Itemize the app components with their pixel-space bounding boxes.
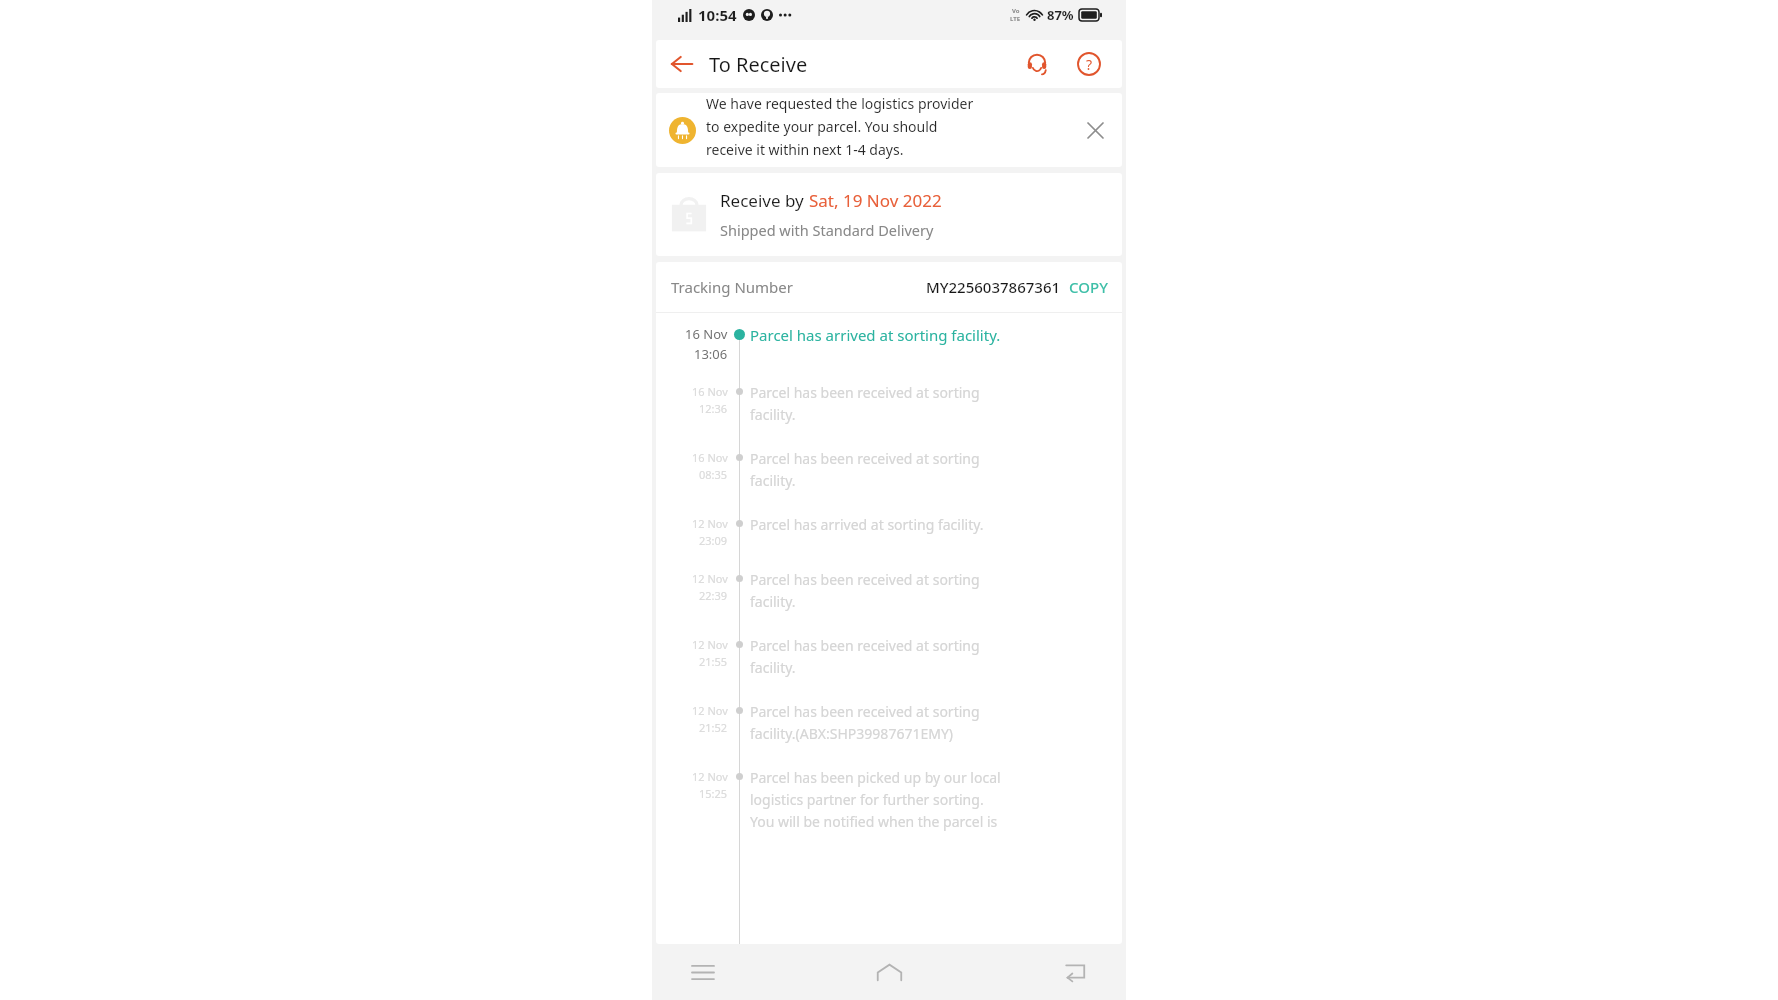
staticText: 12 Nov xyxy=(692,571,728,586)
button[interactable]: 12 Nov xyxy=(656,636,1122,680)
staticText: ? xyxy=(1086,55,1093,74)
staticText: 12 Nov xyxy=(692,637,728,652)
button[interactable]: Help xyxy=(1068,43,1110,85)
staticText: Parcel has arrived at sorting facility. xyxy=(750,325,1001,345)
button[interactable]: Tracking Number xyxy=(656,262,1122,312)
staticText: 15:25 xyxy=(699,786,728,801)
staticText: 21:55 xyxy=(699,654,728,669)
staticText: Parcel has been received at sorting xyxy=(750,702,980,721)
button[interactable]: 16 Nov xyxy=(656,325,1122,363)
staticText: 12:36 xyxy=(699,401,728,416)
staticText: 21:52 xyxy=(699,720,728,735)
button[interactable]: 12 Nov xyxy=(656,570,1122,614)
button[interactable]: 16 Nov xyxy=(656,383,1122,427)
staticText: 12 Nov xyxy=(692,516,728,531)
button[interactable]: Home xyxy=(862,945,916,999)
staticText: Sat, 19 Nov 2022 xyxy=(809,189,942,212)
staticText: logistics partner for further sorting. xyxy=(750,790,984,809)
staticText: Tracking Number xyxy=(671,277,793,297)
staticText: 16 Nov xyxy=(692,384,728,399)
staticText: facility.(ABX:SHP39987671EMY) xyxy=(750,724,954,743)
staticText: receive it within next 1-4 days. xyxy=(706,140,904,159)
staticText: Parcel has been received at sorting xyxy=(750,449,980,468)
button[interactable]: Recent apps xyxy=(676,945,730,999)
button[interactable]: 16 Nov xyxy=(656,449,1122,493)
staticText: COPY xyxy=(1069,277,1108,297)
staticText: to expedite your parcel. You should xyxy=(706,117,938,136)
button[interactable]: 12 Nov xyxy=(656,768,1122,834)
staticText: 12 Nov xyxy=(692,703,728,718)
button[interactable]: Close xyxy=(1078,113,1112,147)
staticText: 16 Nov xyxy=(692,450,728,465)
button[interactable]: We have requested the logistics provider xyxy=(656,93,1122,167)
staticText: 22:39 xyxy=(699,588,728,603)
staticText: Shipped with Standard Delivery xyxy=(720,220,934,240)
staticText: MY2256037867361 xyxy=(926,277,1061,297)
staticText: To Receive xyxy=(709,51,808,78)
staticText: 87% xyxy=(1047,6,1074,24)
staticText: facility. xyxy=(750,471,796,490)
staticText: 08:35 xyxy=(699,467,728,482)
staticText: LTE xyxy=(1010,15,1021,23)
button[interactable]: Back xyxy=(1048,945,1102,999)
staticText: 10:54 xyxy=(698,5,737,25)
button[interactable]: 12 Nov xyxy=(656,702,1122,746)
staticText: We have requested the logistics provider xyxy=(706,94,974,113)
staticText: Parcel has arrived at sorting facility. xyxy=(750,515,984,534)
staticText: Receive by xyxy=(720,189,809,212)
staticText: 16 Nov xyxy=(685,325,728,343)
staticText: Parcel has been received at sorting xyxy=(750,636,980,655)
staticText: Vo xyxy=(1012,7,1020,15)
staticText: Parcel has been received at sorting xyxy=(750,570,980,589)
staticText: 13:06 xyxy=(694,345,728,363)
staticText: 12 Nov xyxy=(692,769,728,784)
button[interactable]: 12 Nov xyxy=(656,515,1122,548)
staticText: 23:09 xyxy=(699,533,728,548)
staticText: facility. xyxy=(750,658,796,677)
button[interactable]: Receive by xyxy=(656,173,1122,256)
button[interactable]: Back xyxy=(662,44,702,84)
staticText: You will be notified when the parcel is xyxy=(750,812,998,831)
staticText: Parcel has been received at sorting xyxy=(750,383,980,402)
staticText: facility. xyxy=(750,405,796,424)
staticText: facility. xyxy=(750,592,796,611)
staticText: Parcel has been picked up by our local xyxy=(750,768,1001,787)
button[interactable]: Customer support xyxy=(1016,43,1058,85)
